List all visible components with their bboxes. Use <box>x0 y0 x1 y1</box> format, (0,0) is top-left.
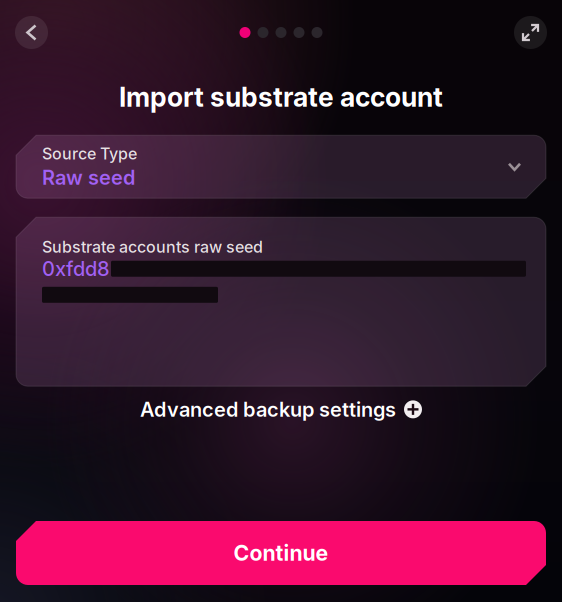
staticText: Import substrate account <box>119 81 443 113</box>
button[interactable]: Advanced backup settings <box>126 386 436 432</box>
button[interactable]: Continue <box>16 521 546 585</box>
staticText: Source Type <box>42 144 137 163</box>
staticText: Continue <box>233 540 328 566</box>
staticText: Raw seed <box>42 165 135 189</box>
button[interactable]: Source Type <box>16 135 546 198</box>
button[interactable]: Expand <box>507 9 554 56</box>
staticText: 0xfdd8 <box>42 257 110 281</box>
staticText: Advanced backup settings <box>140 397 396 421</box>
button[interactable]: Back <box>8 9 55 56</box>
staticText: Substrate accounts raw seed <box>42 237 263 257</box>
